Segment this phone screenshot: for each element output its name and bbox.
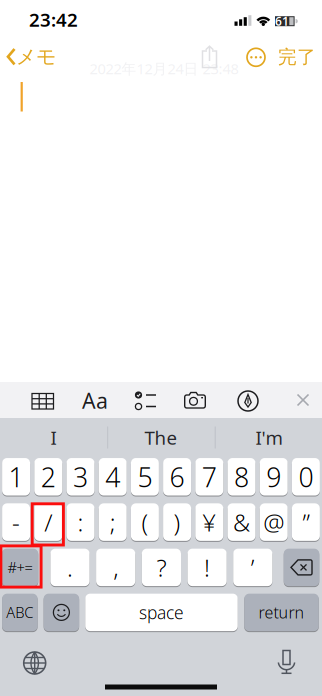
staticText: - [12,506,20,538]
staticText: I [50,425,56,450]
staticText: , [113,551,118,583]
staticText: 6 [170,459,185,494]
staticText: #+= [7,558,32,577]
staticText: 7 [202,459,217,494]
button[interactable] [44,594,79,631]
staticText: space [139,601,184,624]
button[interactable]: ¥ [195,503,223,541]
staticText: メモ [16,44,56,69]
button[interactable]: 8 [227,458,255,496]
button[interactable]: #+= [2,549,38,586]
staticText: 4 [105,459,120,494]
staticText: Aa [82,386,108,415]
button[interactable]: I'm [219,422,319,452]
button[interactable]: The [111,422,211,452]
button[interactable]: I [3,422,103,452]
staticText: 8 [234,459,249,494]
button[interactable] [277,649,295,674]
button[interactable]: 6 [163,458,191,496]
button[interactable]: 3 [66,458,94,496]
staticText: / [44,506,52,538]
staticText: ( [141,506,148,538]
button[interactable]: ” [292,503,320,541]
staticText: 2022年12月24日 23:48 [89,59,238,78]
button[interactable]: ’ [233,549,272,586]
staticText: 3 [73,459,88,494]
staticText: @ [263,506,284,538]
button[interactable]: & [227,503,255,541]
staticText: 完了 [278,45,316,68]
button[interactable]: 2 [34,458,62,496]
staticText: ? [156,551,166,583]
button[interactable]: : [66,503,94,541]
button[interactable]: 完了 [277,47,317,67]
staticText: ” [302,506,309,538]
staticText: & [233,506,250,538]
staticText: ABC [6,603,33,622]
staticText: The [144,425,177,450]
button[interactable] [246,47,266,67]
staticText: 2 [41,459,56,494]
button[interactable]: . [50,549,90,586]
button[interactable] [31,391,55,411]
staticText: ; [110,506,116,538]
button[interactable]: 4 [99,458,127,496]
button[interactable]: ABC [2,594,38,631]
staticText: return [258,602,304,623]
button[interactable] [200,45,220,69]
staticText: 0 [298,459,313,494]
button[interactable] [284,549,319,586]
button[interactable]: ? [142,549,181,586]
button[interactable]: 1 [2,458,30,496]
button[interactable]: ) [163,503,191,541]
button[interactable]: return [244,594,319,631]
button[interactable]: @ [260,503,288,541]
staticText: 1 [9,459,24,494]
button[interactable] [237,390,259,412]
staticText: 5 [137,459,152,494]
button[interactable]: 9 [260,458,288,496]
button[interactable]: ; [99,503,127,541]
button[interactable]: 0 [292,458,320,496]
staticText: 61 [275,13,289,29]
button[interactable] [134,390,158,412]
button[interactable]: Aa [80,389,110,411]
button[interactable]: / [34,503,62,541]
button[interactable]: - [2,503,30,541]
staticText: : [77,506,83,538]
button[interactable]: 7 [195,458,223,496]
button[interactable] [296,393,309,406]
button[interactable]: , [96,549,135,586]
button[interactable] [23,651,47,675]
button[interactable]: ( [131,503,159,541]
staticText: 23:42 [29,7,78,32]
button[interactable]: 5 [131,458,159,496]
button[interactable]: space [85,594,238,631]
staticText: ! [204,551,210,583]
button[interactable]: ! [187,549,227,586]
staticText: . [67,551,73,583]
staticText: ) [174,506,181,538]
staticText: ¥ [202,506,216,538]
button[interactable]: メモ [0,45,54,69]
staticText: ’ [251,551,255,583]
staticText: 9 [266,459,281,494]
button[interactable] [183,391,209,411]
staticText: I'm [255,425,282,450]
